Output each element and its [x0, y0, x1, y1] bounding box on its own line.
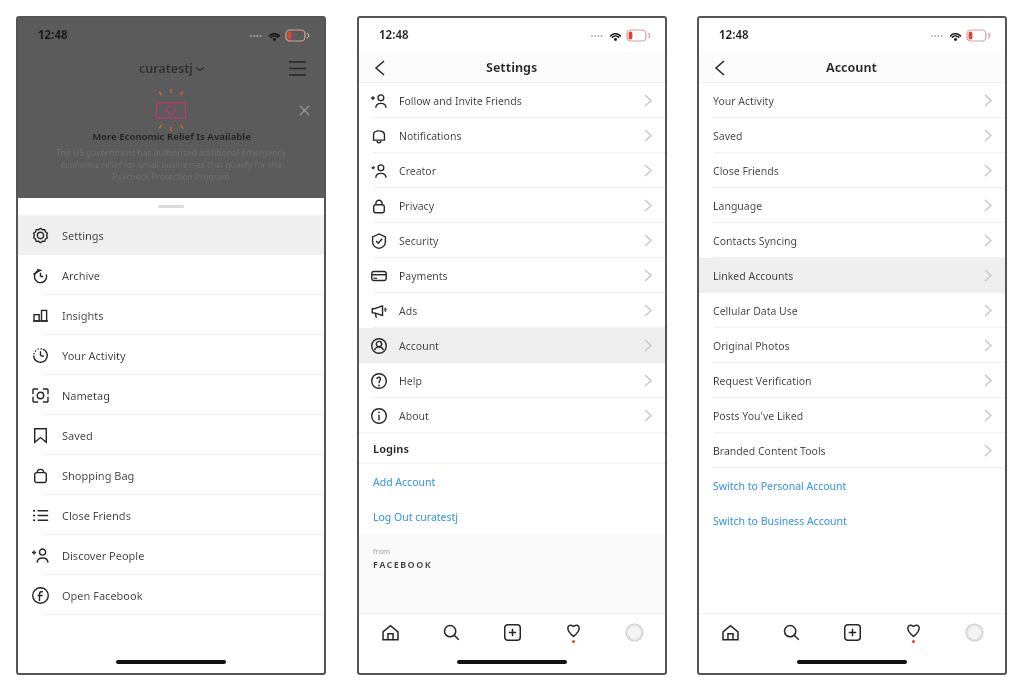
button[interactable]: Profile — [957, 615, 991, 649]
button[interactable]: Switch to Business Account — [699, 503, 1005, 538]
button[interactable]: Add Account — [359, 464, 665, 499]
button[interactable]: Close Friends — [699, 153, 1005, 188]
staticText: curatestj — [139, 60, 193, 77]
staticText: Your Activity — [713, 94, 774, 108]
button[interactable]: Privacy — [359, 188, 665, 223]
button[interactable]: Payments — [359, 258, 665, 293]
button[interactable]: Security — [359, 223, 665, 258]
staticText: from — [373, 546, 391, 556]
button[interactable]: Linked Accounts — [699, 258, 1005, 293]
button[interactable]: Search — [434, 615, 468, 649]
button[interactable]: Account — [359, 328, 665, 363]
button[interactable]: Creator — [359, 153, 665, 188]
staticText: 12:48 — [719, 27, 749, 43]
button[interactable]: Home — [713, 615, 747, 649]
button[interactable]: Saved — [18, 415, 324, 455]
button[interactable]: Archive — [18, 255, 324, 295]
button[interactable]: Original Photos — [699, 328, 1005, 363]
staticText: Cellular Data Use — [713, 304, 798, 318]
staticText: Ads — [399, 304, 418, 318]
button[interactable]: Your Activity — [18, 335, 324, 375]
staticText: Switch to Personal Account — [713, 479, 847, 493]
button[interactable]: Settings — [18, 215, 324, 255]
staticText: Insights — [62, 308, 104, 323]
staticText: Add Account — [373, 475, 436, 489]
staticText: Account — [399, 339, 439, 353]
staticText: Saved — [713, 129, 743, 143]
staticText: Help — [399, 374, 422, 388]
button[interactable]: Create — [495, 615, 529, 649]
staticText: The US government has authorized additio… — [50, 147, 292, 183]
button[interactable]: Contacts Syncing — [699, 223, 1005, 258]
button[interactable]: Close — [294, 100, 314, 120]
staticText: Creator — [399, 164, 437, 178]
staticText: Saved — [62, 428, 93, 443]
staticText: Shopping Bag — [62, 468, 135, 483]
staticText: Close Friends — [713, 164, 779, 178]
button[interactable]: Activity — [896, 615, 930, 649]
button[interactable]: Open Facebook — [18, 575, 324, 615]
staticText: 12:48 — [38, 27, 68, 43]
staticText: Linked Accounts — [713, 269, 794, 283]
staticText: Logins — [373, 441, 409, 456]
button[interactable]: About — [359, 398, 665, 433]
button[interactable]: Nametag — [18, 375, 324, 415]
button[interactable]: Notifications — [359, 118, 665, 153]
button[interactable]: Cellular Data Use — [699, 293, 1005, 328]
button[interactable]: Language — [699, 188, 1005, 223]
button[interactable]: Insights — [18, 295, 324, 335]
staticText: FACEBOOK — [373, 558, 433, 570]
staticText: About — [399, 409, 429, 423]
button[interactable]: Menu — [284, 55, 310, 81]
button[interactable]: Help — [359, 363, 665, 398]
button[interactable]: Saved — [699, 118, 1005, 153]
button[interactable]: Create — [835, 615, 869, 649]
button[interactable]: Activity — [556, 615, 590, 649]
button[interactable]: Back — [367, 55, 393, 81]
staticText: Account — [826, 59, 878, 76]
button[interactable]: Close Friends — [18, 495, 324, 535]
staticText: Payments — [399, 269, 448, 283]
button[interactable]: Discover People — [18, 535, 324, 575]
staticText: Language — [713, 199, 763, 213]
staticText: More Economic Relief Is Available — [92, 130, 251, 143]
staticText: Settings — [486, 59, 538, 76]
staticText: Security — [399, 234, 439, 248]
button[interactable]: curatestj — [139, 60, 204, 77]
button[interactable]: Shopping Bag — [18, 455, 324, 495]
button[interactable]: Request Verification — [699, 363, 1005, 398]
staticText: Follow and Invite Friends — [399, 94, 522, 108]
staticText: Branded Content Tools — [713, 444, 826, 458]
button[interactable]: Home — [373, 615, 407, 649]
staticText: Open Facebook — [62, 588, 143, 603]
staticText: Switch to Business Account — [713, 514, 847, 528]
button[interactable]: Profile — [617, 615, 651, 649]
button[interactable]: Branded Content Tools — [699, 433, 1005, 468]
button[interactable]: Posts You've Liked — [699, 398, 1005, 433]
staticText: Contacts Syncing — [713, 234, 798, 248]
staticText: Archive — [62, 268, 101, 283]
staticText: Notifications — [399, 129, 462, 143]
staticText: Discover People — [62, 548, 145, 563]
staticText: 12:48 — [379, 27, 409, 43]
staticText: Your Activity — [62, 348, 126, 363]
button[interactable]: Ads — [359, 293, 665, 328]
button[interactable]: Your Activity — [699, 83, 1005, 118]
staticText: Original Photos — [713, 339, 790, 353]
button[interactable]: Search — [774, 615, 808, 649]
staticText: Privacy — [399, 199, 435, 213]
staticText: Nametag — [62, 388, 110, 403]
button[interactable]: Switch to Personal Account — [699, 468, 1005, 503]
staticText: Request Verification — [713, 374, 812, 388]
staticText: Posts You've Liked — [713, 409, 804, 423]
button[interactable]: Back — [707, 55, 733, 81]
staticText: Log Out curatestj — [373, 510, 459, 524]
staticText: Settings — [62, 228, 104, 243]
button[interactable]: Follow and Invite Friends — [359, 83, 665, 118]
staticText: Close Friends — [62, 508, 131, 523]
button[interactable]: Log Out curatestj — [359, 499, 665, 534]
